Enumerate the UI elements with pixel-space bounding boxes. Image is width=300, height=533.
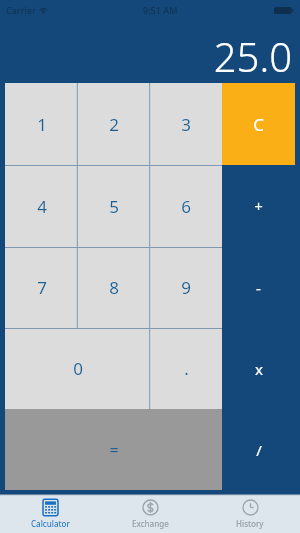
staticText: 0 — [73, 357, 83, 380]
button[interactable]: 1 — [5, 83, 78, 165]
button[interactable]: / — [222, 409, 295, 490]
staticText: 2 — [109, 113, 119, 136]
staticText: . — [184, 357, 189, 380]
button[interactable]: = — [5, 409, 222, 490]
staticText: 4 — [37, 195, 47, 218]
staticText: Carrier — [6, 4, 36, 16]
staticText: 9 — [181, 276, 191, 299]
button[interactable]: 9 — [150, 247, 222, 328]
staticText: = — [109, 439, 119, 461]
button[interactable]: Calculator — [0, 495, 100, 533]
staticText: 3 — [181, 113, 191, 136]
button[interactable]: - — [222, 247, 295, 328]
staticText: C — [253, 113, 264, 136]
button[interactable]: x — [222, 328, 295, 409]
button[interactable]: History — [200, 495, 300, 533]
staticText: 7 — [37, 276, 47, 299]
staticText: / — [256, 440, 262, 460]
staticText: 5 — [109, 195, 119, 218]
staticText: History — [236, 518, 264, 529]
staticText: Exchange — [132, 518, 169, 529]
other: Calculator — [42, 499, 59, 516]
other: Exchange — [142, 499, 159, 516]
button[interactable]: . — [150, 328, 222, 409]
button[interactable]: 5 — [78, 165, 150, 247]
button[interactable]: 6 — [150, 165, 222, 247]
button[interactable]: 3 — [150, 83, 222, 165]
button[interactable]: 0 — [5, 328, 150, 409]
staticText: + — [254, 196, 263, 216]
button[interactable]: 4 — [5, 165, 78, 247]
staticText: 8 — [109, 276, 119, 299]
staticText: Calculator — [31, 518, 70, 529]
button[interactable]: + — [222, 165, 295, 247]
staticText: 1 — [37, 113, 47, 136]
staticText: x — [255, 359, 263, 379]
button[interactable]: Exchange — [100, 495, 200, 533]
button[interactable]: 8 — [78, 247, 150, 328]
staticText: 25.0 — [213, 29, 292, 83]
staticText: 9:51 AM — [143, 4, 178, 16]
staticText: 6 — [181, 195, 191, 218]
button[interactable]: C — [222, 83, 295, 165]
button[interactable]: 7 — [5, 247, 78, 328]
other: History — [242, 499, 259, 516]
button[interactable]: 2 — [78, 83, 150, 165]
staticText: - — [256, 278, 261, 298]
